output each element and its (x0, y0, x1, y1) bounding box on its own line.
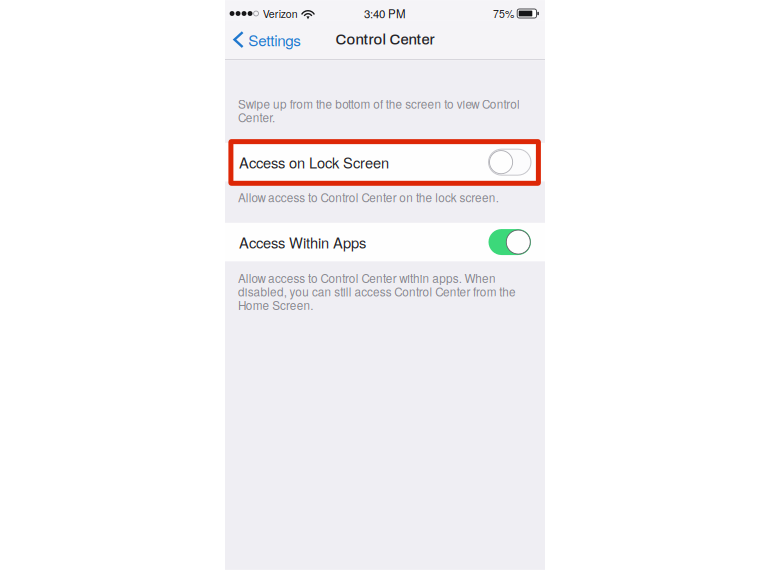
staticText: Verizon (263, 6, 298, 21)
staticText: 75% (493, 6, 514, 21)
staticText: Control Center (335, 31, 434, 48)
staticText: disabled, you can still access Control C… (238, 283, 516, 300)
staticText: Access on Lock Screen (239, 152, 389, 173)
staticText: Access Within Apps (239, 231, 366, 252)
button[interactable]: Settings (225, 20, 311, 59)
staticText: Center. (238, 109, 275, 125)
staticText: Swipe up from the bottom of the screen t… (238, 95, 520, 112)
button[interactable]: Access Within Apps (225, 223, 545, 261)
staticText: 3:40 PM (364, 5, 406, 21)
staticText: Allow access to Control Center on the lo… (238, 189, 499, 205)
staticText: Settings (248, 29, 301, 50)
staticText: Home Screen. (238, 296, 313, 313)
staticText: Allow access to Control Center within ap… (238, 269, 496, 286)
button[interactable]: Access on Lock Screen (225, 143, 545, 181)
